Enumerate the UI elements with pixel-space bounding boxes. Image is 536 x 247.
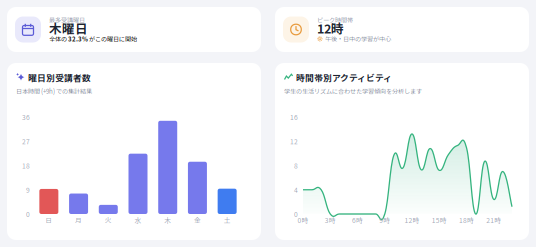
staticText: 午後・日中の学習が中心 (325, 34, 391, 43)
staticText: 18時 (459, 215, 474, 225)
staticText: 火 (105, 215, 112, 225)
staticText: 15時 (432, 215, 447, 225)
staticText: 0 (294, 209, 298, 219)
staticText: 12 (290, 136, 298, 146)
staticText: 12時 (404, 215, 419, 225)
staticText: 8 (294, 161, 298, 170)
staticText: 木曜日 (49, 19, 88, 37)
staticText: 日 (45, 215, 52, 225)
staticText: 4 (294, 185, 298, 195)
staticText: 12時 (317, 19, 344, 37)
staticText: 0時 (297, 215, 308, 225)
staticText: 木 (164, 215, 171, 225)
staticText: 月 (75, 215, 82, 225)
staticText: 土 (224, 215, 231, 225)
staticText: 最多受講曜日 (49, 15, 85, 24)
staticText: 水 (134, 215, 141, 225)
staticText: 曜日別受講者数 (28, 71, 91, 84)
staticText: 18 (22, 161, 30, 170)
staticText: 9 (26, 185, 30, 195)
staticText: 3時 (325, 215, 336, 225)
staticText: 21時 (486, 215, 501, 225)
staticText: 時間帯別アクティビティ (296, 71, 392, 84)
staticText: 9時 (379, 215, 390, 225)
staticText: 日本時間 (+9h) での集計結果 (16, 87, 92, 96)
button[interactable]: 最多受講曜日 (7, 7, 261, 52)
staticText: 金 (194, 215, 201, 225)
staticText: 0 (26, 209, 30, 219)
staticText: ピーク時間帯 (317, 15, 353, 24)
staticText: 6時 (352, 215, 363, 225)
button[interactable]: ピーク時間帯 (275, 7, 529, 52)
staticText: 全体の 32.3% がこの曜日に開始 (49, 34, 137, 43)
staticText: 16 (290, 112, 298, 122)
staticText: 学生の生活リズムに合わせた学習傾向を分析します (284, 87, 422, 96)
staticText: 36 (22, 112, 30, 122)
staticText: 27 (22, 136, 30, 146)
